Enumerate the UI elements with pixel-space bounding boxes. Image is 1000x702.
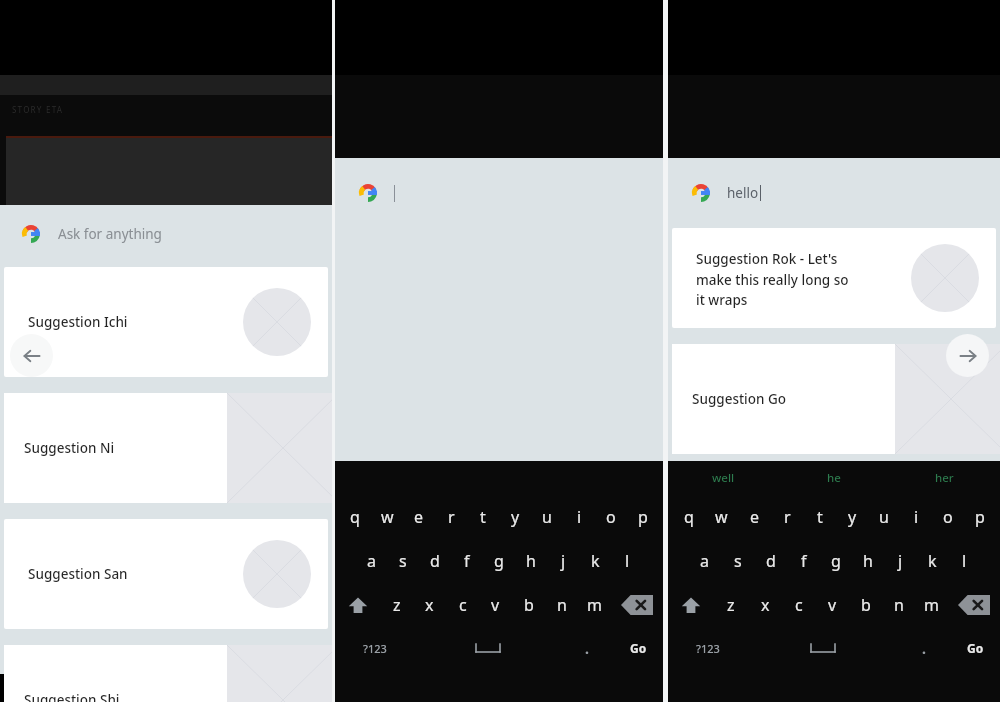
button[interactable]: p: [964, 495, 996, 539]
button[interactable]: Go: [613, 627, 663, 669]
button[interactable]: f: [451, 539, 483, 583]
button[interactable]: a: [355, 539, 387, 583]
staticText: Suggestion Ichi: [28, 313, 128, 331]
button[interactable]: s: [387, 539, 419, 583]
button[interactable]: v: [816, 583, 849, 627]
button[interactable]: he: [778, 461, 889, 495]
staticText: j: [898, 550, 903, 572]
button[interactable]: t: [467, 495, 499, 539]
staticText: j: [561, 550, 566, 572]
staticText: v: [491, 594, 500, 616]
button[interactable]: Forward: [946, 334, 989, 377]
button[interactable]: Space: [748, 627, 898, 669]
button[interactable]: Backspace: [948, 583, 1000, 627]
button[interactable]: o: [595, 495, 627, 539]
staticText: c: [459, 594, 467, 616]
button[interactable]: Suggestion Rok - Let's make this really …: [672, 228, 996, 328]
button[interactable]: Shift: [335, 583, 381, 627]
staticText: g: [494, 550, 504, 572]
button[interactable]: y: [836, 495, 868, 539]
button[interactable]: p: [627, 495, 659, 539]
button[interactable]: c: [782, 583, 816, 627]
button[interactable]: m: [915, 583, 948, 627]
staticText: u: [879, 506, 889, 528]
button[interactable]: r: [771, 495, 804, 539]
button[interactable]: her: [889, 461, 1000, 495]
button[interactable]: h: [515, 539, 547, 583]
button[interactable]: .: [561, 627, 613, 669]
button[interactable]: z: [714, 583, 748, 627]
button[interactable]: q: [339, 495, 371, 539]
button[interactable]: n: [545, 583, 578, 627]
button[interactable]: j: [547, 539, 579, 583]
staticText: o: [606, 506, 616, 528]
button[interactable]: v: [479, 583, 512, 627]
button[interactable]: o: [932, 495, 964, 539]
button[interactable]: Suggestion Ni: [4, 393, 227, 503]
button[interactable]: k: [916, 539, 948, 583]
button[interactable]: q: [672, 495, 705, 539]
button[interactable]: x: [748, 583, 782, 627]
button[interactable]: Back: [10, 334, 53, 377]
button[interactable]: Suggestion Go: [672, 344, 895, 454]
button[interactable]: u: [531, 495, 563, 539]
button[interactable]: z: [381, 583, 413, 627]
button[interactable]: ?123: [668, 627, 748, 669]
staticText: z: [727, 594, 735, 616]
button[interactable]: y: [499, 495, 531, 539]
button[interactable]: i: [900, 495, 932, 539]
staticText: h: [863, 550, 873, 572]
button[interactable]: u: [868, 495, 900, 539]
staticText: p: [975, 506, 985, 528]
button[interactable]: k: [579, 539, 611, 583]
button[interactable]: a: [688, 539, 721, 583]
staticText: hello: [727, 184, 759, 202]
staticText: l: [625, 550, 630, 572]
button[interactable]: n: [882, 583, 915, 627]
button[interactable]: w: [705, 495, 738, 539]
button[interactable]: Space: [415, 627, 561, 669]
button[interactable]: l: [611, 539, 643, 583]
button[interactable]: h: [852, 539, 884, 583]
button[interactable]: Shift: [668, 583, 714, 627]
button[interactable]: Go: [950, 627, 1000, 669]
staticText: z: [393, 594, 401, 616]
button[interactable]: Backspace: [611, 583, 663, 627]
button[interactable]: hello: [668, 158, 1000, 228]
button[interactable]: Suggestion Ichi: [4, 267, 328, 377]
button[interactable]: Ask for anything: [0, 205, 332, 262]
button[interactable]: d: [754, 539, 787, 583]
button[interactable]: b: [512, 583, 545, 627]
button[interactable]: ?123: [335, 627, 415, 669]
button[interactable]: j: [884, 539, 916, 583]
button[interactable]: .: [898, 627, 950, 669]
button[interactable]: t: [804, 495, 836, 539]
staticText: m: [587, 594, 602, 616]
staticText: s: [399, 550, 407, 572]
button[interactable]: l: [948, 539, 980, 583]
button[interactable]: i: [563, 495, 595, 539]
staticText: ?123: [363, 641, 387, 656]
staticText: Suggestion Rok - Let's make this really …: [696, 250, 849, 309]
button[interactable]: e: [738, 495, 771, 539]
button[interactable]: c: [446, 583, 479, 627]
button[interactable]: e: [403, 495, 435, 539]
staticText: r: [448, 506, 455, 528]
button[interactable]: b: [849, 583, 882, 627]
button[interactable]: x: [413, 583, 446, 627]
button[interactable]: m: [578, 583, 611, 627]
button[interactable]: Suggestion Shi: [4, 645, 227, 702]
staticText: w: [715, 506, 728, 528]
button[interactable]: f: [787, 539, 820, 583]
button[interactable]: Suggestion San: [4, 519, 328, 629]
button[interactable]: well: [668, 461, 778, 495]
staticText: STORY ETA: [12, 104, 64, 115]
staticText: Go: [630, 640, 647, 656]
button[interactable]: g: [820, 539, 852, 583]
button[interactable]: d: [419, 539, 451, 583]
button[interactable]: w: [371, 495, 403, 539]
button[interactable]: g: [483, 539, 515, 583]
button[interactable]: s: [721, 539, 754, 583]
button[interactable]: r: [435, 495, 467, 539]
button[interactable]: [335, 158, 663, 228]
